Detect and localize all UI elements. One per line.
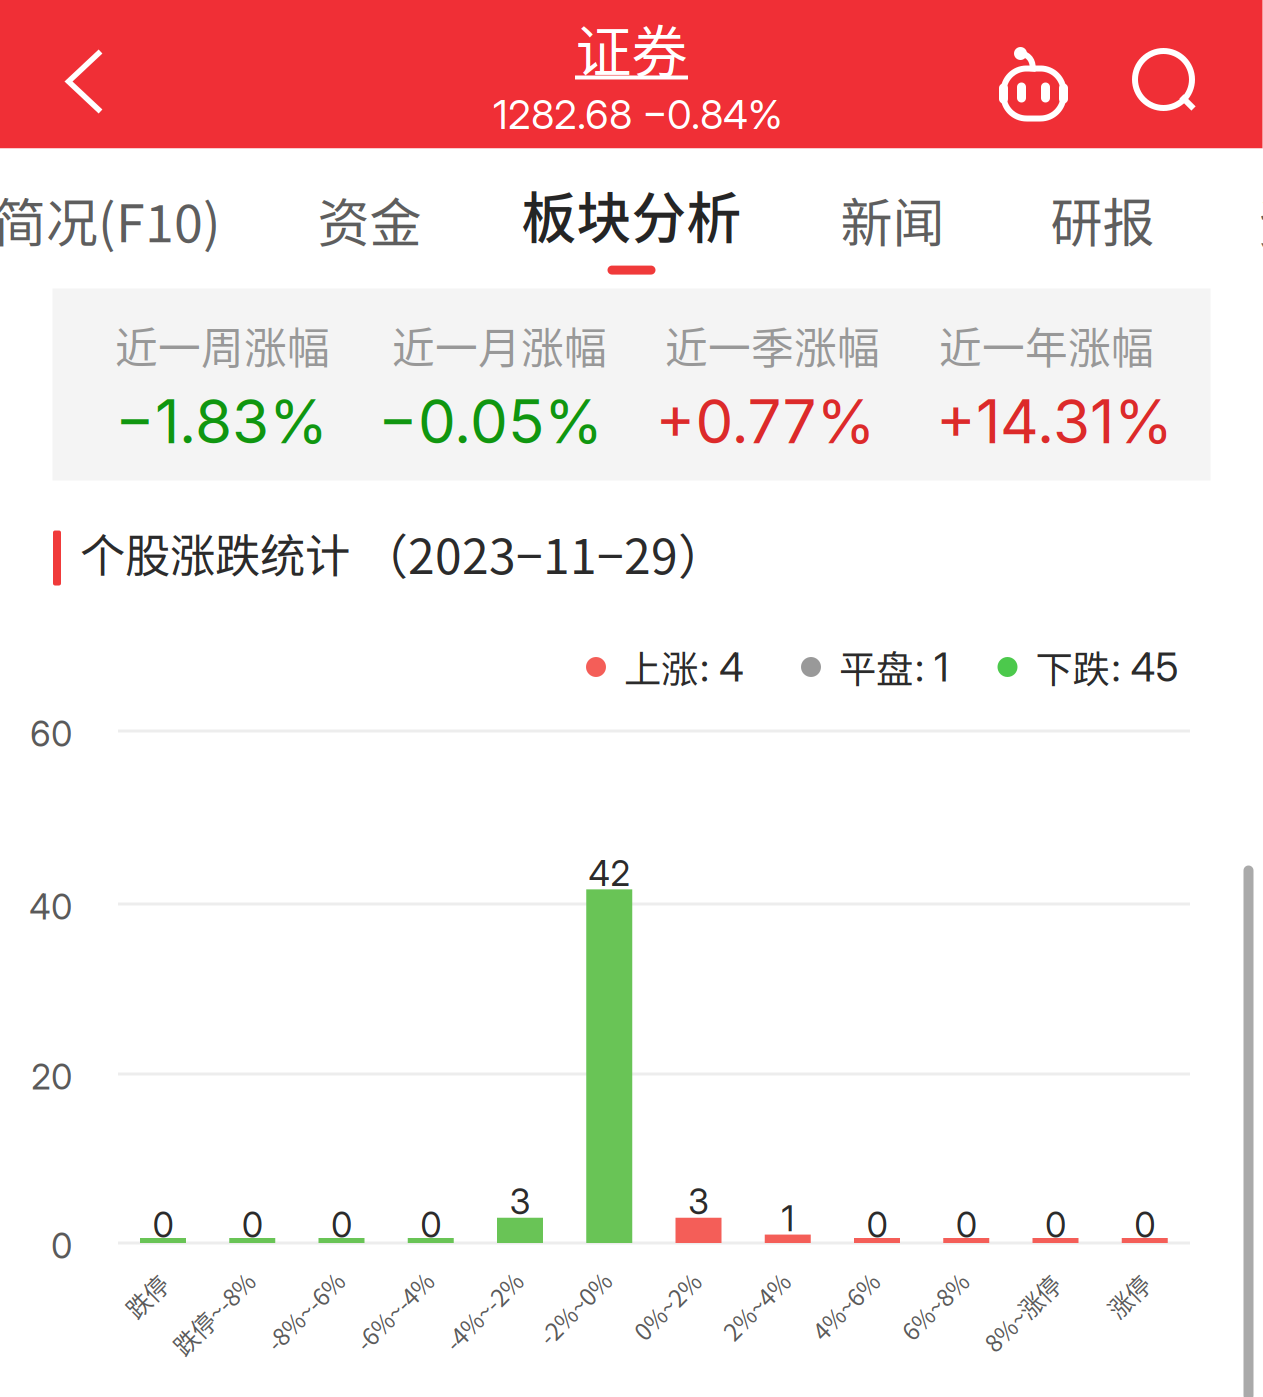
staticText: 40 xyxy=(29,886,72,928)
staticText: 3 xyxy=(688,1181,709,1223)
staticText: 板块分析 xyxy=(521,174,741,254)
staticText: 0 xyxy=(152,1204,173,1246)
staticText: 0 xyxy=(1134,1204,1155,1246)
staticText: 0 xyxy=(420,1204,441,1246)
staticText: 新闻 xyxy=(840,182,944,257)
staticText: 0 xyxy=(331,1204,352,1246)
staticText: 1 xyxy=(781,1198,794,1239)
staticText: 60 xyxy=(30,713,72,755)
button[interactable]: AI assistant xyxy=(977,27,1089,139)
staticText: 资金 xyxy=(1258,182,1263,257)
staticText: 跌停 xyxy=(122,1279,170,1313)
staticText: -8%~-6% xyxy=(255,1294,354,1328)
button[interactable]: 新闻 xyxy=(807,159,977,279)
staticText: 证券 xyxy=(575,7,687,88)
staticText: +0.77% xyxy=(655,385,875,458)
staticText: -2%~0% xyxy=(529,1291,620,1325)
staticText: 42 xyxy=(588,852,630,894)
staticText: 上涨 xyxy=(624,640,698,694)
staticText: 0 xyxy=(242,1204,263,1246)
staticText: 1 xyxy=(934,643,949,691)
staticText: 6%~8% xyxy=(893,1289,976,1323)
staticText: −1.83% xyxy=(115,385,328,458)
button[interactable]: Back xyxy=(28,7,140,156)
button[interactable]: 资金 xyxy=(1225,159,1263,279)
staticText: 近一周涨幅 xyxy=(115,315,330,376)
button[interactable]: 资金 xyxy=(284,159,454,279)
staticText: 0 xyxy=(51,1225,72,1267)
staticText: : xyxy=(915,643,924,691)
staticText: 1282.68 −0.84% xyxy=(493,90,782,139)
staticText: 0 xyxy=(956,1204,977,1246)
staticText: : xyxy=(1111,643,1120,691)
staticText: 研报 xyxy=(1050,182,1154,257)
staticText: 2%~4% xyxy=(715,1289,798,1323)
button[interactable]: 研报 xyxy=(1017,159,1187,279)
staticText: 跌停~-8% xyxy=(162,1296,266,1330)
staticText: （2023−11−29） xyxy=(360,518,726,588)
staticText: 4 xyxy=(719,643,744,691)
staticText: 简况(F10) xyxy=(0,182,221,257)
staticText: 3 xyxy=(509,1181,530,1223)
staticText: 下跌 xyxy=(1035,640,1109,694)
staticText: 平盘 xyxy=(839,640,913,694)
staticText: 资金 xyxy=(317,182,421,257)
staticText: 近一月涨幅 xyxy=(392,315,607,376)
staticText: 45 xyxy=(1130,643,1178,691)
staticText: 个股涨跌统计 xyxy=(80,520,350,586)
staticText: +14.31% xyxy=(936,385,1173,458)
staticText: 0%~2% xyxy=(625,1289,708,1323)
staticText: 近一季涨幅 xyxy=(665,315,880,376)
staticText: -4%~-2% xyxy=(434,1294,533,1328)
staticText: 20 xyxy=(31,1056,72,1098)
staticText: −0.05% xyxy=(378,385,603,458)
button[interactable]: 简况(F10) xyxy=(0,159,232,279)
staticText: -6%~-4% xyxy=(345,1294,444,1328)
staticText: 0 xyxy=(866,1204,887,1246)
staticText: 8%~涨停 xyxy=(974,1296,1070,1330)
button[interactable]: 板块分析 xyxy=(506,159,756,289)
staticText: : xyxy=(700,643,709,691)
staticText: 4%~6% xyxy=(804,1289,887,1323)
staticText: 近一年涨幅 xyxy=(939,315,1154,376)
button[interactable]: Search xyxy=(1112,28,1224,140)
staticText: 涨停 xyxy=(1104,1279,1152,1313)
staticText: 0 xyxy=(1045,1204,1066,1246)
